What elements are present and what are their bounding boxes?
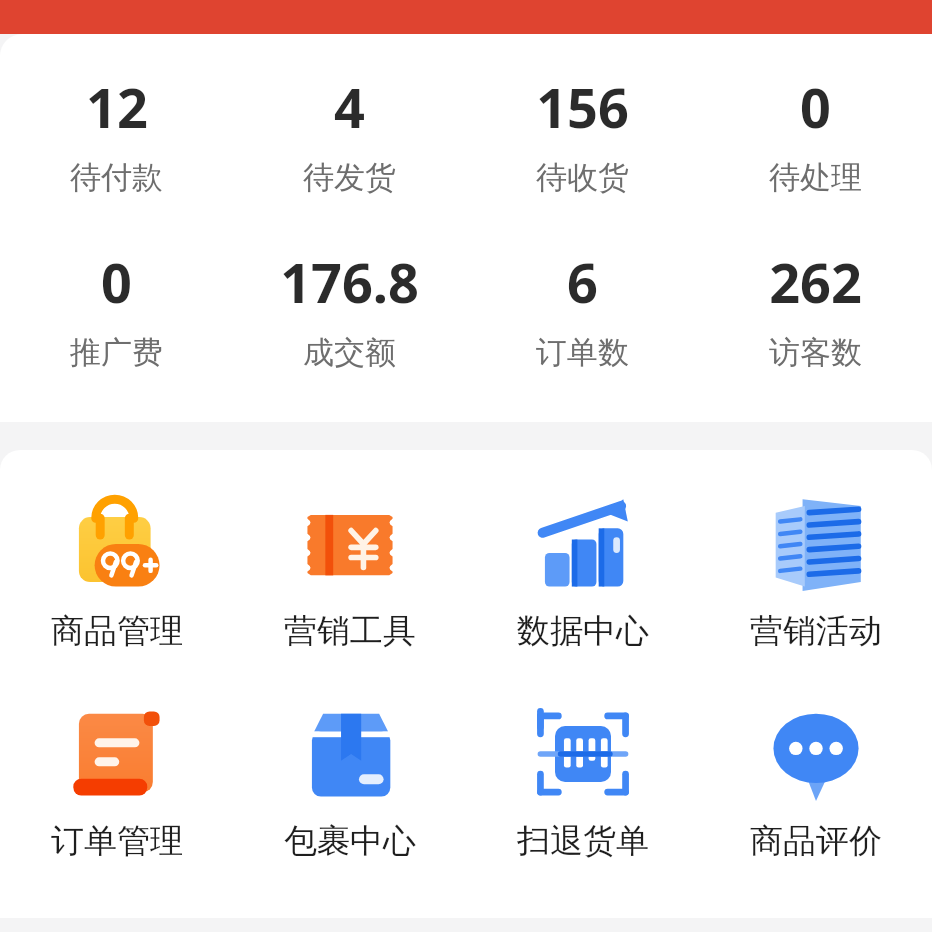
staticText: 待发货	[303, 158, 396, 197]
staticText: 4	[334, 70, 365, 144]
staticText: 待收货	[536, 158, 629, 197]
staticText: 0	[800, 70, 831, 144]
button[interactable]: 0	[0, 245, 233, 372]
staticText: 订单数	[536, 333, 629, 372]
staticText: 数据中心	[517, 610, 649, 652]
button[interactable]: 包裹中心	[233, 698, 466, 862]
staticText: 262	[769, 245, 862, 319]
staticText: 访客数	[769, 333, 862, 372]
staticText: 商品评价	[750, 820, 882, 862]
staticText: 6	[567, 245, 598, 319]
button[interactable]: 0	[699, 70, 932, 197]
staticText: 176.8	[280, 245, 419, 319]
button[interactable]: 营销工具	[233, 488, 466, 652]
staticText: 营销活动	[750, 610, 882, 652]
button[interactable]: 176.8	[233, 245, 466, 372]
staticText: 12	[86, 70, 148, 144]
staticText: 0	[101, 245, 132, 319]
staticText: 待付款	[70, 158, 163, 197]
button[interactable]: 12	[0, 70, 233, 197]
staticText: 包裹中心	[284, 820, 416, 862]
staticText: 推广费	[70, 333, 163, 372]
staticText: 156	[536, 70, 629, 144]
staticText: 商品管理	[51, 610, 183, 652]
staticText: 营销工具	[284, 610, 416, 652]
button[interactable]: 6	[466, 245, 699, 372]
button[interactable]: 订单管理	[0, 698, 233, 862]
button[interactable]: 营销活动	[699, 488, 932, 652]
staticText: 成交额	[303, 333, 396, 372]
staticText: 扫退货单	[517, 820, 649, 862]
button[interactable]: 156	[466, 70, 699, 197]
staticText: 订单管理	[51, 820, 183, 862]
button[interactable]: 262	[699, 245, 932, 372]
button[interactable]: 商品管理	[0, 488, 233, 652]
button[interactable]: 商品评价	[699, 698, 932, 862]
staticText: 待处理	[769, 158, 862, 197]
button[interactable]: 4	[233, 70, 466, 197]
button[interactable]: 数据中心	[466, 488, 699, 652]
button[interactable]: 扫退货单	[466, 698, 699, 862]
